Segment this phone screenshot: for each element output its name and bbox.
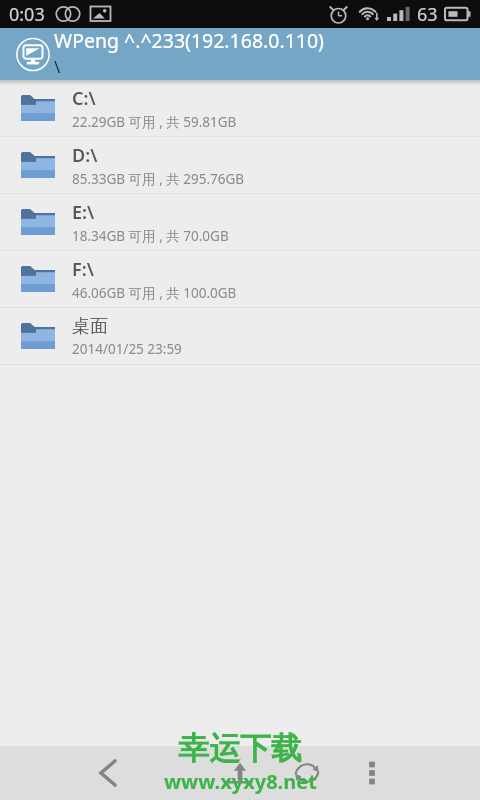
button[interactable]: Back	[84, 749, 132, 797]
staticText: E:\	[72, 200, 95, 225]
staticText: 桌面	[72, 315, 108, 338]
button[interactable]: 桌面	[0, 308, 480, 365]
staticText: www.xyxy8.net	[164, 768, 317, 795]
staticText: 2014/01/25 23:59	[72, 340, 182, 358]
staticText: \	[54, 55, 61, 78]
button[interactable]: C:\	[0, 80, 480, 137]
staticText: C:\	[72, 86, 96, 111]
staticText: 22.29GB 可用 , 共 59.81GB	[72, 113, 237, 131]
button[interactable]: E:\	[0, 194, 480, 251]
button[interactable]: Recents	[283, 749, 331, 797]
staticText: 46.06GB 可用 , 共 100.0GB	[72, 284, 237, 302]
staticText: 18.34GB 可用 , 共 70.0GB	[72, 227, 229, 245]
button[interactable]: F:\	[0, 251, 480, 308]
button[interactable]: Home	[216, 749, 264, 797]
button[interactable]: More options	[348, 749, 396, 797]
staticText: D:\	[72, 143, 98, 168]
staticText: 63	[417, 2, 438, 27]
button[interactable]: WPeng ^.^233(192.168.0.110)	[0, 28, 480, 80]
staticText: 幸运下载	[178, 729, 302, 768]
staticText: 0:03	[9, 2, 45, 27]
button[interactable]: D:\	[0, 137, 480, 194]
staticText: F:\	[72, 257, 94, 282]
staticText: 85.33GB 可用 , 共 295.76GB	[72, 170, 245, 188]
staticText: WPeng ^.^233(192.168.0.110)	[54, 27, 324, 54]
